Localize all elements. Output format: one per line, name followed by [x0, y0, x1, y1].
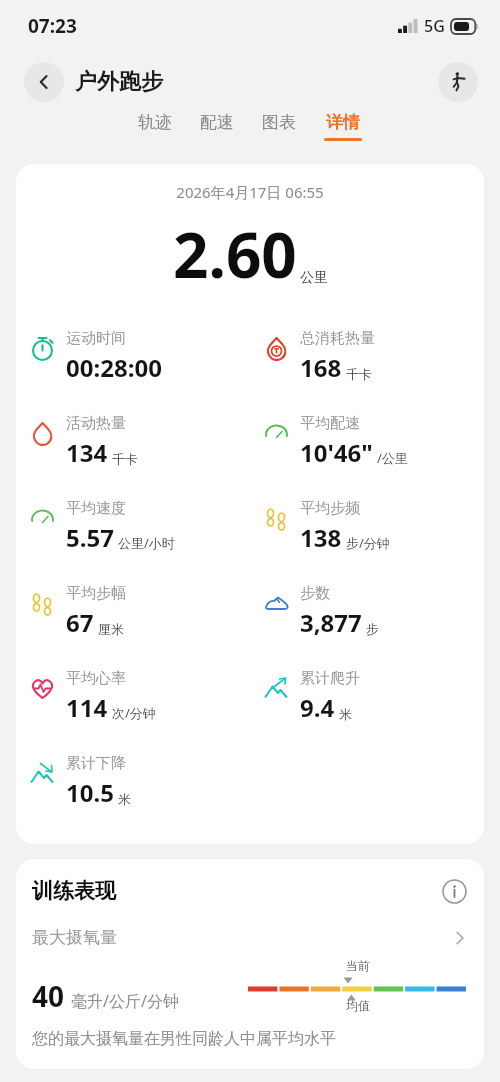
button[interactable]: Back — [24, 62, 64, 102]
staticText: 千卡 — [112, 451, 138, 467]
button[interactable]: 详情 — [324, 112, 362, 141]
staticText: 公里/小时 — [118, 534, 175, 552]
staticText: 毫升/公斤/分钟 — [71, 990, 179, 1012]
staticText: /公里 — [377, 449, 408, 467]
staticText: 3,877 — [300, 606, 362, 639]
button[interactable]: 活动热量 — [16, 411, 250, 496]
staticText: 5.57 — [66, 521, 114, 554]
button[interactable]: Info — [440, 877, 468, 905]
button[interactable]: 平均心率 — [16, 666, 250, 751]
staticText: 轨迹 — [138, 112, 172, 133]
button[interactable]: 步数 — [250, 581, 484, 666]
staticText: 平均步频 — [300, 499, 360, 518]
button[interactable]: 总消耗热量 — [250, 326, 484, 411]
button[interactable]: 图表 — [262, 112, 296, 138]
staticText: 平均心率 — [66, 669, 126, 688]
button[interactable]: 配速 — [200, 112, 234, 138]
button[interactable]: 平均配速 — [250, 411, 484, 496]
button[interactable]: 累计下降 — [16, 751, 250, 836]
button[interactable]: 平均步幅 — [16, 581, 250, 666]
staticText: 138 — [300, 521, 342, 554]
staticText: 配速 — [200, 112, 234, 133]
staticText: 累计爬升 — [300, 669, 360, 688]
staticText: 米 — [339, 706, 352, 722]
staticText: 平均速度 — [66, 499, 126, 518]
staticText: 平均配速 — [300, 414, 360, 433]
button[interactable]: 最大摄氧量 — [32, 927, 468, 948]
staticText: 次/分钟 — [112, 704, 156, 722]
staticText: 2026年4月17日 06:55 — [16, 182, 484, 202]
staticText: 累计下降 — [66, 754, 126, 773]
staticText: 67 — [66, 606, 94, 639]
staticText: 当前 — [346, 958, 370, 973]
staticText: 总消耗热量 — [300, 329, 375, 348]
staticText: 步/分钟 — [346, 534, 390, 552]
button[interactable]: 累计爬升 — [250, 666, 484, 751]
staticText: 平均步幅 — [66, 584, 126, 603]
staticText: 米 — [118, 791, 131, 807]
staticText: 5G — [424, 15, 445, 37]
button[interactable]: Workout settings — [438, 62, 478, 102]
staticText: 户外跑步 — [75, 68, 163, 96]
staticText: 千卡 — [346, 366, 372, 382]
staticText: 图表 — [262, 112, 296, 133]
staticText: 10'46" — [300, 436, 373, 469]
staticText: 最大摄氧量 — [32, 927, 117, 948]
button[interactable]: 运动时间 — [16, 326, 250, 411]
staticText: 厘米 — [98, 621, 124, 637]
staticText: 114 — [66, 691, 108, 724]
staticText: 详情 — [326, 112, 360, 133]
button[interactable]: 平均速度 — [16, 496, 250, 581]
button[interactable]: 平均步频 — [250, 496, 484, 581]
staticText: 活动热量 — [66, 414, 126, 433]
staticText: 134 — [66, 436, 108, 469]
staticText: 均值 — [346, 998, 370, 1013]
staticText: 40 — [32, 977, 65, 1015]
staticText: 训练表现 — [32, 878, 116, 904]
staticText: 00:28:00 — [66, 351, 162, 384]
staticText: 公里 — [300, 269, 328, 287]
staticText: 您的最大摄氧量在男性同龄人中属平均水平 — [32, 1029, 336, 1049]
staticText: 9.4 — [300, 691, 335, 724]
staticText: 运动时间 — [66, 329, 126, 348]
staticText: 07:23 — [28, 13, 77, 39]
staticText: 168 — [300, 351, 342, 384]
button[interactable]: 轨迹 — [138, 112, 172, 138]
staticText: 步 — [366, 621, 379, 637]
staticText: 步数 — [300, 584, 330, 603]
staticText: 10.5 — [66, 776, 114, 809]
staticText: 2.60 — [173, 212, 297, 296]
